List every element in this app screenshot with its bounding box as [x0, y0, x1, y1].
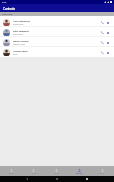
staticText: Nurse — [13, 53, 18, 55]
staticText: Jasmine Lewis — [13, 50, 28, 53]
button[interactable]: Call — [99, 38, 105, 47]
button[interactable]: Message — [105, 48, 111, 57]
button[interactable]: Recents — [84, 176, 90, 182]
button[interactable]: Call — [99, 48, 105, 57]
button[interactable]: Visits — [22, 166, 45, 176]
staticText: Administrator — [13, 23, 24, 25]
staticText: Tasks — [54, 172, 60, 174]
staticText: Care Staff — [2, 13, 13, 16]
staticText: Julia Stephenson — [13, 20, 31, 23]
button[interactable]: Message — [105, 28, 111, 37]
button[interactable]: Call — [99, 18, 105, 27]
button[interactable]: More — [91, 166, 114, 176]
button[interactable]: Marcus Conway — [0, 37, 114, 47]
button[interactable]: Peter Ferdinand — [0, 27, 114, 37]
button[interactable]: Jasmine Lewis — [0, 47, 114, 57]
staticText: Marcus Conway — [13, 40, 29, 43]
staticText: Home — [8, 172, 14, 174]
staticText: Visits — [31, 172, 37, 174]
button[interactable]: Message — [105, 38, 111, 47]
button[interactable]: Call — [99, 28, 105, 37]
staticText: People — [76, 172, 83, 174]
button[interactable]: People — [68, 166, 91, 176]
staticText: Support Worker — [13, 43, 26, 45]
staticText: More — [100, 172, 105, 174]
button[interactable]: Message — [105, 18, 111, 27]
button[interactable]: Home — [0, 166, 22, 176]
staticText: Care Worker — [13, 33, 23, 35]
staticText: 9:30 — [2, 1, 7, 4]
button[interactable]: Back — [24, 176, 30, 182]
button[interactable]: Home — [54, 176, 60, 182]
button[interactable]: Julia Stephenson — [0, 17, 114, 27]
button[interactable]: Tasks — [45, 166, 68, 176]
staticText: Contacts — [3, 7, 16, 11]
staticText: Peter Ferdinand — [13, 30, 29, 33]
